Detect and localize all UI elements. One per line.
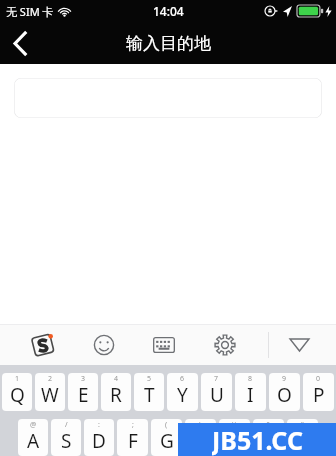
button[interactable]: 0 <box>303 373 334 411</box>
staticText: U <box>210 382 224 408</box>
staticText: Y <box>177 382 188 408</box>
staticText: 14:04 <box>153 3 184 19</box>
staticText: E <box>78 382 89 408</box>
staticText: 7 <box>214 374 219 384</box>
staticText: K <box>263 428 275 454</box>
button[interactable]: 3 <box>68 373 98 411</box>
staticText: G <box>160 428 174 454</box>
button[interactable]: @ <box>18 419 48 456</box>
staticText: 1 <box>15 374 20 384</box>
button[interactable]: Hide keyboard <box>282 328 316 362</box>
staticText: P <box>313 382 325 408</box>
button[interactable]: & <box>253 419 284 456</box>
staticText: " <box>301 420 304 430</box>
staticText: ) <box>199 420 202 430</box>
button[interactable]: " <box>287 419 318 456</box>
button[interactable]: : <box>84 419 114 456</box>
button[interactable]: 8 <box>235 373 266 411</box>
staticText: ( <box>165 420 168 430</box>
staticText: 3 <box>81 374 86 384</box>
staticText: 9 <box>282 374 287 384</box>
staticText: A <box>27 428 40 454</box>
button[interactable]: 2 <box>35 373 65 411</box>
button[interactable]: Settings <box>207 327 243 363</box>
button[interactable]: ¥ <box>219 419 250 456</box>
button[interactable]: Emoji <box>86 327 122 363</box>
staticText: I <box>247 382 254 408</box>
staticText: T <box>144 382 155 408</box>
button[interactable]: 1 <box>2 373 32 411</box>
staticText: O <box>277 382 292 408</box>
staticText: 4 <box>114 374 119 384</box>
staticText: L <box>298 428 308 454</box>
staticText: D <box>92 428 106 454</box>
staticText: 5 <box>147 374 152 384</box>
button[interactable]: 5 <box>134 373 164 411</box>
button[interactable]: ) <box>185 419 216 456</box>
button[interactable]: Sogou input method <box>25 327 61 363</box>
button[interactable]: / <box>51 419 81 456</box>
staticText: ; <box>132 420 134 430</box>
staticText: S <box>61 428 72 454</box>
button[interactable]: 4 <box>101 373 131 411</box>
staticText: @ <box>30 420 37 430</box>
staticText: 无 SIM 卡 <box>6 4 54 19</box>
button[interactable]: 6 <box>167 373 198 411</box>
staticText: F <box>128 428 138 454</box>
button[interactable]: ( <box>151 419 182 456</box>
staticText: & <box>266 420 272 430</box>
staticText: R <box>110 382 122 408</box>
button[interactable] <box>14 78 322 118</box>
button[interactable]: ; <box>117 419 148 456</box>
button[interactable]: 7 <box>201 373 232 411</box>
staticText: Q <box>10 382 25 408</box>
staticText: JB51.CC <box>212 423 303 456</box>
staticText: 0 <box>316 374 321 384</box>
staticText: : <box>98 420 100 430</box>
button[interactable]: Keyboard layout <box>146 327 182 363</box>
button[interactable]: Back <box>0 23 40 63</box>
staticText: 2 <box>48 374 53 384</box>
staticText: ¥ <box>232 420 237 430</box>
staticText: J <box>232 428 238 454</box>
staticText: 输入目的地 <box>126 33 211 54</box>
staticText: 8 <box>248 374 253 384</box>
staticText: 6 <box>180 374 185 384</box>
staticText: W <box>41 382 59 408</box>
button[interactable]: 9 <box>269 373 300 411</box>
staticText: / <box>65 420 68 430</box>
